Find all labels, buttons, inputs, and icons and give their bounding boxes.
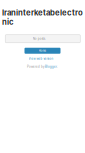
button[interactable]: View web version [0,56,85,62]
staticText: Powered by [27,65,44,68]
staticText: Home [38,49,46,52]
staticText: View web version [28,57,53,60]
button[interactable]: Powered by [0,64,85,70]
staticText: No posts. [33,37,46,40]
button[interactable]: Home [24,48,60,54]
staticText: Blogger [45,65,57,68]
staticText: nic [2,17,14,27]
staticText: . [57,65,58,68]
staticText: Iraninterketabelectro [2,8,83,17]
